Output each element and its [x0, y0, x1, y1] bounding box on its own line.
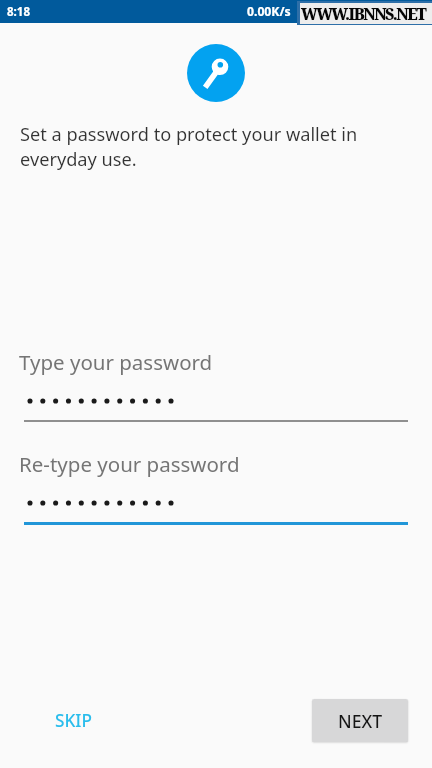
- staticText: 0.00K/s: [247, 3, 291, 20]
- staticText: 8:18: [7, 4, 30, 20]
- other: Password key: [187, 44, 245, 102]
- staticText: Set a password to protect your wallet in…: [20, 122, 385, 171]
- button[interactable]: SKIP: [39, 698, 108, 743]
- staticText: Re-type your password: [19, 450, 240, 478]
- staticText: Type your password: [19, 348, 213, 376]
- button[interactable]: [12, 344, 420, 424]
- button[interactable]: NEXT: [312, 699, 408, 742]
- staticText: NEXT: [338, 709, 383, 733]
- staticText: WWW.IBNNS.NET: [301, 4, 426, 25]
- button[interactable]: [12, 446, 420, 526]
- staticText: SKIP: [55, 709, 92, 732]
